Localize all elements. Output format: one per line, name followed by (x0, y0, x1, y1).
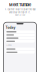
button[interactable]: List row (5, 37, 35, 39)
staticText: and stay on top of it. (9, 11, 31, 14)
button[interactable]: List row (5, 51, 35, 54)
staticText: Take a tour (14, 14, 25, 16)
staticText: A calmer way to plan the day (4, 8, 35, 11)
button[interactable]: List row (5, 30, 35, 33)
staticText: LATER (6, 44, 11, 47)
button[interactable]: List row (5, 48, 35, 50)
button[interactable]: List row (5, 34, 35, 36)
button[interactable]: List row (5, 40, 35, 43)
staticText: Meet Tumble (9, 2, 31, 7)
staticText: Today (5, 26, 15, 29)
